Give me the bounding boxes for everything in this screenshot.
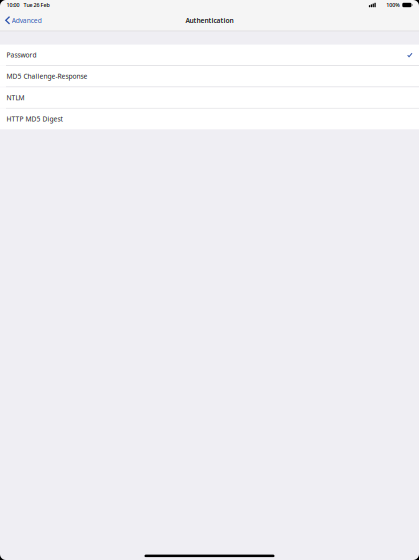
button[interactable]: NTLM <box>0 87 419 108</box>
button[interactable]: Back to Advanced <box>0 10 47 31</box>
staticText: MD5 Challenge-Response <box>6 72 87 81</box>
staticText: Tue 26 Feb <box>23 1 49 9</box>
staticText: Password <box>6 50 36 59</box>
staticText: 10:00 <box>6 1 19 9</box>
staticText: 100% <box>386 1 400 9</box>
staticText: NTLM <box>6 93 24 102</box>
button[interactable]: HTTP MD5 Digest <box>0 109 419 129</box>
staticText: HTTP MD5 Digest <box>6 114 62 123</box>
staticText: Advanced <box>12 16 42 25</box>
button[interactable]: Password <box>0 45 419 65</box>
staticText: Authentication <box>185 16 233 25</box>
button[interactable]: MD5 Challenge-Response <box>0 66 419 87</box>
navigationBar: Authentication <box>0 10 419 31</box>
